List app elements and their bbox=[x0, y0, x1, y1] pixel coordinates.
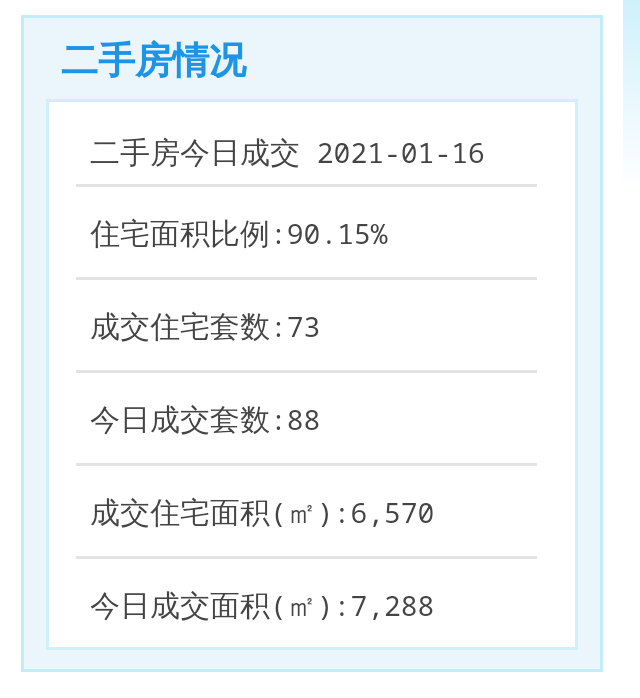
button[interactable]: 二手房今日成交 2021-01-16 bbox=[49, 102, 575, 187]
staticText: 今日成交面积(㎡):7,288 bbox=[90, 586, 435, 625]
button[interactable]: 今日成交套数:88 bbox=[49, 373, 575, 466]
staticText: 成交住宅套数:73 bbox=[90, 307, 321, 346]
button[interactable]: 住宅面积比例:90.15% bbox=[49, 187, 575, 280]
button[interactable]: 成交住宅套数:73 bbox=[49, 280, 575, 373]
button[interactable]: 今日成交面积(㎡):7,288 bbox=[49, 559, 575, 646]
staticText: 二手房情况 bbox=[61, 37, 246, 84]
staticText: 二手房今日成交 2021-01-16 bbox=[90, 133, 485, 172]
button[interactable] bbox=[21, 15, 603, 672]
button[interactable]: 成交住宅面积(㎡):6,570 bbox=[49, 466, 575, 559]
staticText: 今日成交套数:88 bbox=[90, 400, 321, 439]
staticText: 住宅面积比例:90.15% bbox=[90, 214, 388, 253]
staticText: 成交住宅面积(㎡):6,570 bbox=[90, 493, 435, 532]
